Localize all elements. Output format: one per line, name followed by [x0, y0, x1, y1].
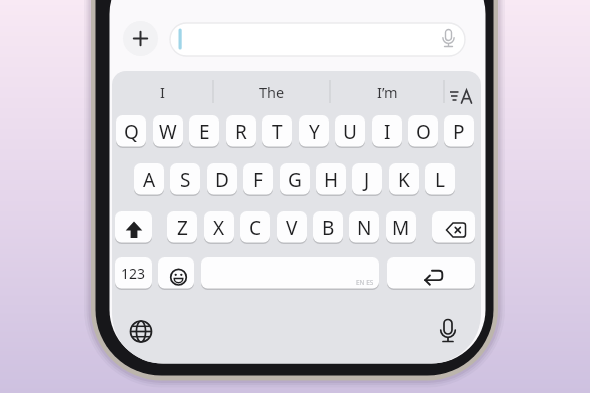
staticText: The [259, 82, 285, 102]
staticText: I [160, 82, 165, 102]
staticText: I [384, 119, 391, 145]
staticText: D [215, 167, 229, 193]
staticText: 123 [121, 264, 146, 283]
staticText: H [324, 167, 339, 193]
button[interactable]: I [112, 78, 213, 105]
staticText: T [272, 119, 283, 145]
staticText: I’m [377, 82, 398, 102]
button[interactable]: U [335, 115, 365, 148]
staticText: V [286, 215, 298, 241]
button[interactable]: D [207, 163, 237, 196]
button[interactable] [170, 23, 465, 56]
button[interactable]: N [349, 211, 379, 244]
staticText: B [322, 215, 335, 241]
staticText: F [253, 167, 263, 193]
button[interactable] [158, 257, 194, 290]
button[interactable]: 123 [115, 257, 152, 290]
staticText: K [398, 167, 410, 193]
staticText: P [453, 119, 465, 145]
staticText: C [249, 215, 262, 241]
button[interactable]: H [316, 163, 346, 196]
staticText: E [199, 119, 210, 145]
button[interactable]: S [170, 163, 200, 196]
button[interactable]: L [425, 163, 455, 196]
button[interactable]: E [189, 115, 219, 148]
staticText: R [235, 119, 247, 145]
button[interactable]: P [444, 115, 474, 148]
button[interactable]: A [134, 163, 164, 196]
button[interactable]: X [204, 211, 234, 244]
staticText: X [213, 215, 225, 241]
staticText: J [364, 167, 370, 193]
button[interactable]: T [262, 115, 292, 148]
button[interactable]: O [408, 115, 438, 148]
button[interactable]: Y [299, 115, 329, 148]
button[interactable]: Q [116, 115, 146, 148]
staticText: G [288, 167, 302, 193]
button[interactable] [432, 211, 475, 244]
button[interactable] [115, 211, 152, 244]
button[interactable]: The [213, 78, 330, 105]
button[interactable]: I [372, 115, 402, 148]
staticText: EN ES [356, 278, 374, 287]
staticText: W [159, 119, 177, 145]
button[interactable]: EN ES [201, 257, 379, 290]
staticText: Z [177, 215, 188, 241]
button[interactable]: W [153, 115, 183, 148]
button[interactable]: R [226, 115, 256, 148]
button[interactable]: J [352, 163, 382, 196]
button[interactable]: I’m [330, 78, 444, 105]
button[interactable]: F [243, 163, 273, 196]
button[interactable] [123, 21, 158, 56]
staticText: A [143, 167, 156, 193]
staticText: Y [309, 119, 320, 145]
staticText: M [392, 215, 410, 241]
button[interactable]: C [240, 211, 270, 244]
button[interactable]: M [386, 211, 416, 244]
button[interactable]: V [277, 211, 307, 244]
button[interactable]: Z [167, 211, 197, 244]
button[interactable]: K [389, 163, 419, 196]
staticText: N [357, 215, 372, 241]
staticText: Q [124, 119, 139, 145]
button[interactable]: G [280, 163, 310, 196]
button[interactable] [387, 257, 475, 290]
staticText: O [416, 119, 431, 145]
staticText: S [180, 167, 191, 193]
staticText: U [343, 119, 357, 145]
button[interactable]: B [313, 211, 343, 244]
staticText: L [435, 167, 445, 193]
